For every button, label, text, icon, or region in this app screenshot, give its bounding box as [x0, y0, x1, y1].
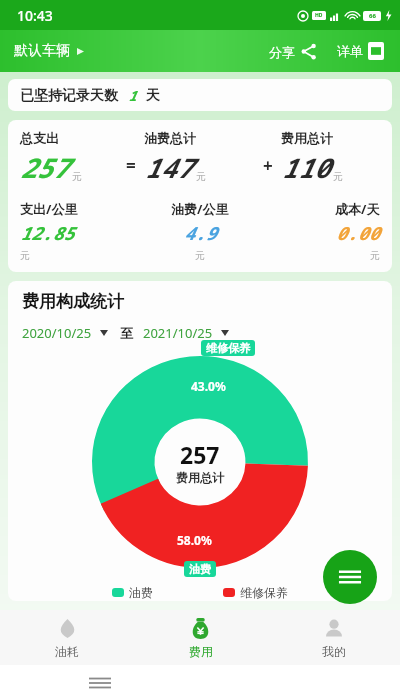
staticText: 147 — [144, 149, 193, 186]
staticText: 总支出 — [20, 130, 59, 146]
staticText: 成本/天 — [335, 200, 380, 218]
button[interactable]: 2021/10/25 — [143, 322, 229, 344]
staticText: = — [126, 154, 136, 177]
staticText: 油费/公里 — [171, 200, 229, 218]
staticText: 12.85 — [20, 221, 74, 246]
button[interactable]: 费用 — [134, 610, 267, 665]
staticText: 元 — [333, 170, 343, 183]
button[interactable]: 总支出 — [8, 120, 392, 272]
staticText: 详单 — [337, 43, 363, 59]
staticText: 66 — [369, 12, 376, 20]
staticText: 10:43 — [17, 6, 53, 25]
staticText: 油费总计 — [144, 130, 196, 146]
button[interactable]: 我的 — [267, 610, 400, 665]
button[interactable]: 已坚持记录天数 — [8, 79, 392, 111]
button[interactable]: 详单 — [333, 38, 388, 64]
staticText: 257 — [20, 149, 69, 186]
staticText: 油费 — [189, 562, 211, 576]
staticText: 至 — [120, 325, 133, 341]
button[interactable]: 维修保养 — [223, 585, 288, 600]
staticText: 4.9 — [184, 221, 217, 246]
button[interactable]: Menu — [323, 550, 377, 604]
staticText: 费用构成统计 — [22, 291, 124, 312]
staticText: 油费 — [129, 585, 153, 600]
staticText: 2021/10/25 — [143, 324, 213, 342]
staticText: 天 — [146, 87, 160, 105]
staticText: + — [263, 154, 273, 177]
staticText: 维修保养 — [206, 341, 250, 355]
staticText: 1 — [128, 86, 137, 105]
staticText: 元 — [196, 170, 206, 183]
staticText: HD — [315, 12, 323, 19]
staticText: 元 — [20, 249, 30, 262]
button[interactable]: 油耗 — [0, 610, 134, 665]
staticText: 费用总计 — [281, 130, 333, 146]
staticText: 元 — [370, 249, 380, 262]
staticText: 2020/10/25 — [22, 324, 92, 342]
staticText: 元 — [72, 170, 82, 183]
button[interactable]: 2020/10/25 — [22, 322, 108, 344]
staticText: 分享 — [269, 44, 295, 60]
staticText: 费用总计 — [176, 470, 224, 485]
staticText: 支出/公里 — [20, 200, 78, 218]
staticText: 110 — [281, 149, 330, 186]
staticText: 257 — [180, 439, 220, 470]
staticText: 43.0% — [191, 378, 226, 394]
staticText: 0.00 — [336, 221, 380, 246]
button[interactable]: 默认车辆 — [10, 38, 88, 64]
staticText: 维修保养 — [240, 585, 288, 600]
staticText: 油耗 — [55, 644, 79, 659]
staticText: 费用 — [189, 644, 213, 659]
staticText: 我的 — [322, 644, 346, 659]
button[interactable]: 油费 — [112, 585, 153, 600]
staticText: 默认车辆 — [14, 42, 70, 60]
staticText: 元 — [195, 249, 205, 262]
staticText: 58.0% — [177, 532, 212, 548]
button[interactable]: 分享 — [265, 39, 321, 64]
staticText: 已坚持记录天数 — [20, 87, 118, 105]
